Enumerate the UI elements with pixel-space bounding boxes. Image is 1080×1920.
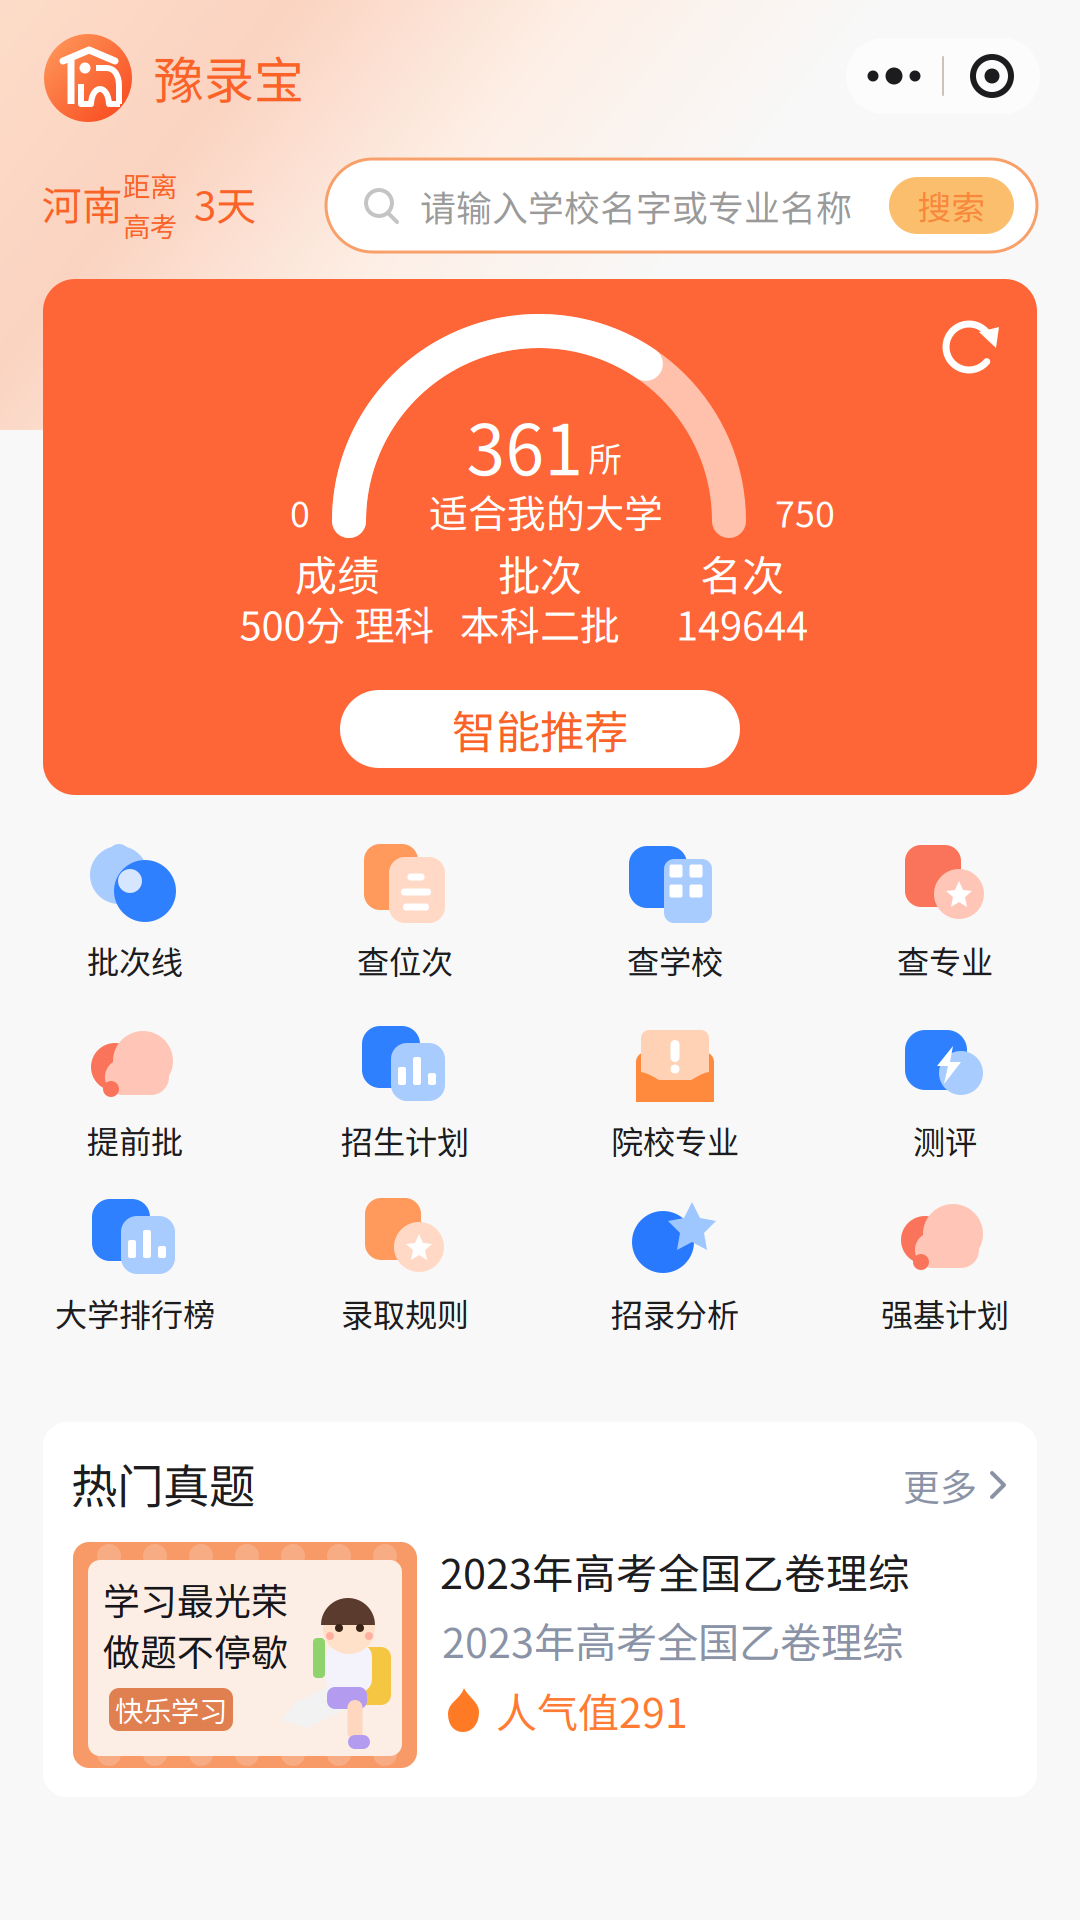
button[interactable]: 请输入学校名字或专业名称	[326, 159, 1037, 252]
button[interactable]: 测评	[810, 1019, 1080, 1194]
staticText: 名次	[700, 542, 784, 603]
staticText: 豫录宝	[154, 41, 304, 113]
button[interactable]: 智能推荐	[340, 690, 740, 768]
button[interactable]: 更多	[843, 1460, 1007, 1510]
button[interactable]: 录取规则	[270, 1192, 540, 1367]
button[interactable]: 查位次	[270, 839, 540, 1014]
staticText: 查专业	[897, 937, 993, 983]
staticText: 河南	[42, 174, 122, 232]
staticText: 学习最光荣	[103, 1572, 288, 1626]
button[interactable]: 招录分析	[540, 1192, 810, 1367]
button[interactable]: 查学校	[540, 839, 810, 1014]
button[interactable]: 查专业	[810, 839, 1080, 1014]
staticText: 149644	[676, 594, 808, 652]
staticText: 招生计划	[341, 1117, 469, 1163]
staticText: 适合我的大学	[429, 483, 663, 539]
staticText: 强基计划	[881, 1290, 1009, 1336]
staticText: 高考	[123, 205, 177, 245]
button[interactable]: 院校专业	[540, 1019, 810, 1194]
button[interactable]: 提前批	[0, 1019, 270, 1194]
button[interactable]: 招生计划	[270, 1019, 540, 1194]
staticText: 所	[588, 433, 622, 481]
staticText: 更多	[903, 1458, 977, 1512]
staticText: 快乐学习	[115, 1689, 227, 1730]
staticText: 提前批	[87, 1117, 183, 1163]
staticText: 测评	[913, 1117, 977, 1163]
staticText: 招录分析	[611, 1290, 739, 1336]
button[interactable]: More options	[846, 38, 1040, 114]
button[interactable]: 强基计划	[810, 1192, 1080, 1367]
staticText: 智能推荐	[452, 697, 628, 761]
staticText: 搜索	[917, 181, 985, 230]
staticText: 成绩	[295, 542, 379, 603]
staticText: 查学校	[627, 937, 723, 983]
staticText: 人气值291	[496, 1680, 688, 1740]
staticText: 热门真题	[71, 1449, 255, 1516]
staticText: 请输入学校名字或专业名称	[420, 180, 852, 232]
staticText: 录取规则	[341, 1290, 469, 1336]
staticText: 本科二批	[460, 594, 620, 652]
staticText: 大学排行榜	[55, 1290, 215, 1336]
staticText: 做题不停歇	[103, 1623, 288, 1677]
staticText: 3天	[194, 174, 256, 232]
staticText: 361	[466, 395, 583, 495]
staticText: 查位次	[357, 937, 453, 983]
staticText: 750	[775, 486, 835, 538]
button[interactable]: Refresh	[929, 303, 1009, 383]
button[interactable]: 批次线	[0, 839, 270, 1014]
staticText: 2023年高考全国乙卷理综	[440, 1541, 910, 1601]
staticText: 500分 理科	[239, 594, 434, 652]
staticText: 0	[290, 486, 310, 538]
button[interactable]: 大学排行榜	[0, 1192, 270, 1367]
staticText: 批次	[498, 542, 582, 603]
staticText: 院校专业	[611, 1117, 739, 1163]
staticText: 2023年高考全国乙卷理综	[442, 1610, 903, 1670]
button[interactable]: Exam paper thumbnail	[73, 1542, 417, 1768]
staticText: 距离	[123, 165, 177, 205]
staticText: 批次线	[87, 937, 183, 983]
